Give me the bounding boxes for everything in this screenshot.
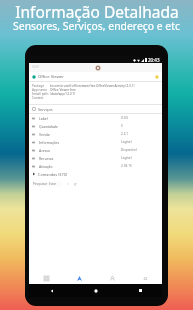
button[interactable]: Quantidade bbox=[29, 122, 162, 130]
button[interactable]: Label bbox=[29, 114, 162, 122]
staticText: Office Viewer bbox=[38, 74, 64, 80]
staticText: Context bbox=[32, 96, 44, 100]
button[interactable]: Apps bbox=[29, 272, 63, 284]
staticText: 5 bbox=[121, 124, 123, 128]
button[interactable]: Sort bbox=[72, 181, 79, 187]
staticText: Office Viewer free bbox=[50, 88, 76, 92]
staticText: br.com.brunolf.officeviewerfree.OfficeVi… bbox=[50, 84, 135, 88]
button[interactable]: Acesso bbox=[29, 146, 162, 154]
staticText: Package bbox=[32, 84, 45, 88]
button[interactable]: Dropdown bbox=[65, 181, 70, 187]
button[interactable]: Notifications bbox=[129, 272, 162, 284]
staticText: Informação Detalhada bbox=[15, 1, 179, 22]
button[interactable]: Comandos (370) bbox=[29, 170, 162, 178]
staticText: Informações bbox=[39, 140, 60, 145]
staticText: Acesso bbox=[39, 148, 51, 153]
button[interactable]: Explore bbox=[63, 272, 96, 284]
staticText: 2.2.1 bbox=[121, 132, 129, 136]
other: App logo bbox=[95, 65, 101, 71]
button[interactable]: App icon bbox=[29, 72, 162, 81]
staticText: Sensores, Serviços, endereço e etc bbox=[13, 19, 180, 33]
staticText: Ativação bbox=[39, 164, 53, 169]
button[interactable]: Serviços bbox=[29, 105, 162, 113]
staticText: Quantidade bbox=[39, 124, 58, 129]
button[interactable]: Recursos bbox=[29, 154, 162, 162]
staticText: Comandos (370) bbox=[38, 172, 67, 177]
button[interactable]: Versão bbox=[29, 130, 162, 138]
staticText: App name bbox=[32, 88, 47, 92]
button[interactable]: Profile bbox=[96, 272, 129, 284]
staticText: 0.0.5 bbox=[121, 116, 129, 120]
staticText: Versão bbox=[39, 132, 50, 137]
staticText: Legível bbox=[121, 156, 132, 160]
button[interactable]: Pesquisar listar bbox=[32, 181, 62, 187]
other: Favourite bbox=[155, 75, 159, 79]
button[interactable]: Ativação bbox=[29, 162, 162, 170]
button[interactable]: Informações bbox=[29, 138, 162, 146]
button[interactable]: Recents bbox=[118, 284, 162, 297]
button[interactable]: Back bbox=[29, 284, 74, 297]
other: App icon bbox=[32, 75, 36, 79]
staticText: Recursos bbox=[39, 156, 54, 161]
staticText: Disponível bbox=[121, 148, 137, 152]
button[interactable]: Home bbox=[74, 284, 118, 297]
staticText: Pesquisar listar bbox=[33, 182, 57, 186]
staticText: 2.93.15 bbox=[121, 164, 132, 168]
staticText: Serviços bbox=[38, 107, 53, 112]
staticText: Label bbox=[39, 116, 48, 121]
staticText: Install path bbox=[32, 92, 49, 96]
staticText: /data/app/ (2.0.1) bbox=[50, 92, 76, 96]
staticText: Legível bbox=[121, 140, 132, 144]
staticText: 20:43 bbox=[148, 57, 160, 63]
